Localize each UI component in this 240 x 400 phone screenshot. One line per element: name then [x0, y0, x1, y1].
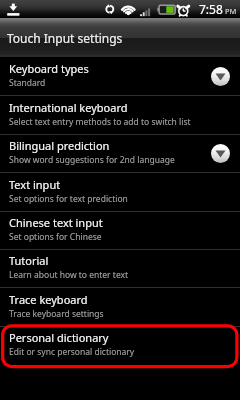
staticText: Text input	[9, 177, 61, 192]
staticText: International keyboard	[9, 100, 128, 115]
staticText: Trace keyboard settings	[9, 308, 104, 320]
button[interactable]: Expand	[211, 67, 230, 86]
staticText: Touch Input settings	[7, 30, 123, 46]
button[interactable]: Personal dictionary	[0, 326, 240, 365]
button[interactable]: International keyboard	[0, 95, 240, 135]
staticText: Chinese text input	[9, 215, 103, 230]
button[interactable]: Trace keyboard	[0, 287, 240, 327]
staticText: Set options for Chinese	[9, 231, 102, 243]
staticText: Trace keyboard	[9, 292, 88, 307]
button[interactable]: Bilingual prediction	[0, 134, 240, 173]
staticText: Learn about how to enter text	[9, 269, 129, 281]
staticText: Set options for text prediction	[9, 193, 128, 205]
staticText: Keyboard types	[9, 61, 89, 76]
button[interactable]: Text input	[0, 172, 240, 212]
staticText: Personal dictionary	[9, 330, 109, 345]
button[interactable]: Chinese text input	[0, 211, 240, 250]
staticText: 7:58	[199, 1, 223, 17]
staticText: Standard	[9, 77, 46, 89]
staticText: Edit or sync personal dictionary	[9, 346, 135, 358]
button[interactable]: Keyboard types	[0, 57, 240, 96]
staticText: PM	[225, 6, 237, 16]
staticText: Show word suggestions for 2nd language	[9, 154, 175, 166]
staticText: Select text entry methods to add to swit…	[9, 116, 191, 128]
staticText: Bilingual prediction	[9, 138, 110, 153]
button[interactable]: Expand	[211, 144, 230, 163]
staticText: Tutorial	[9, 253, 49, 268]
button[interactable]: Tutorial	[0, 249, 240, 288]
